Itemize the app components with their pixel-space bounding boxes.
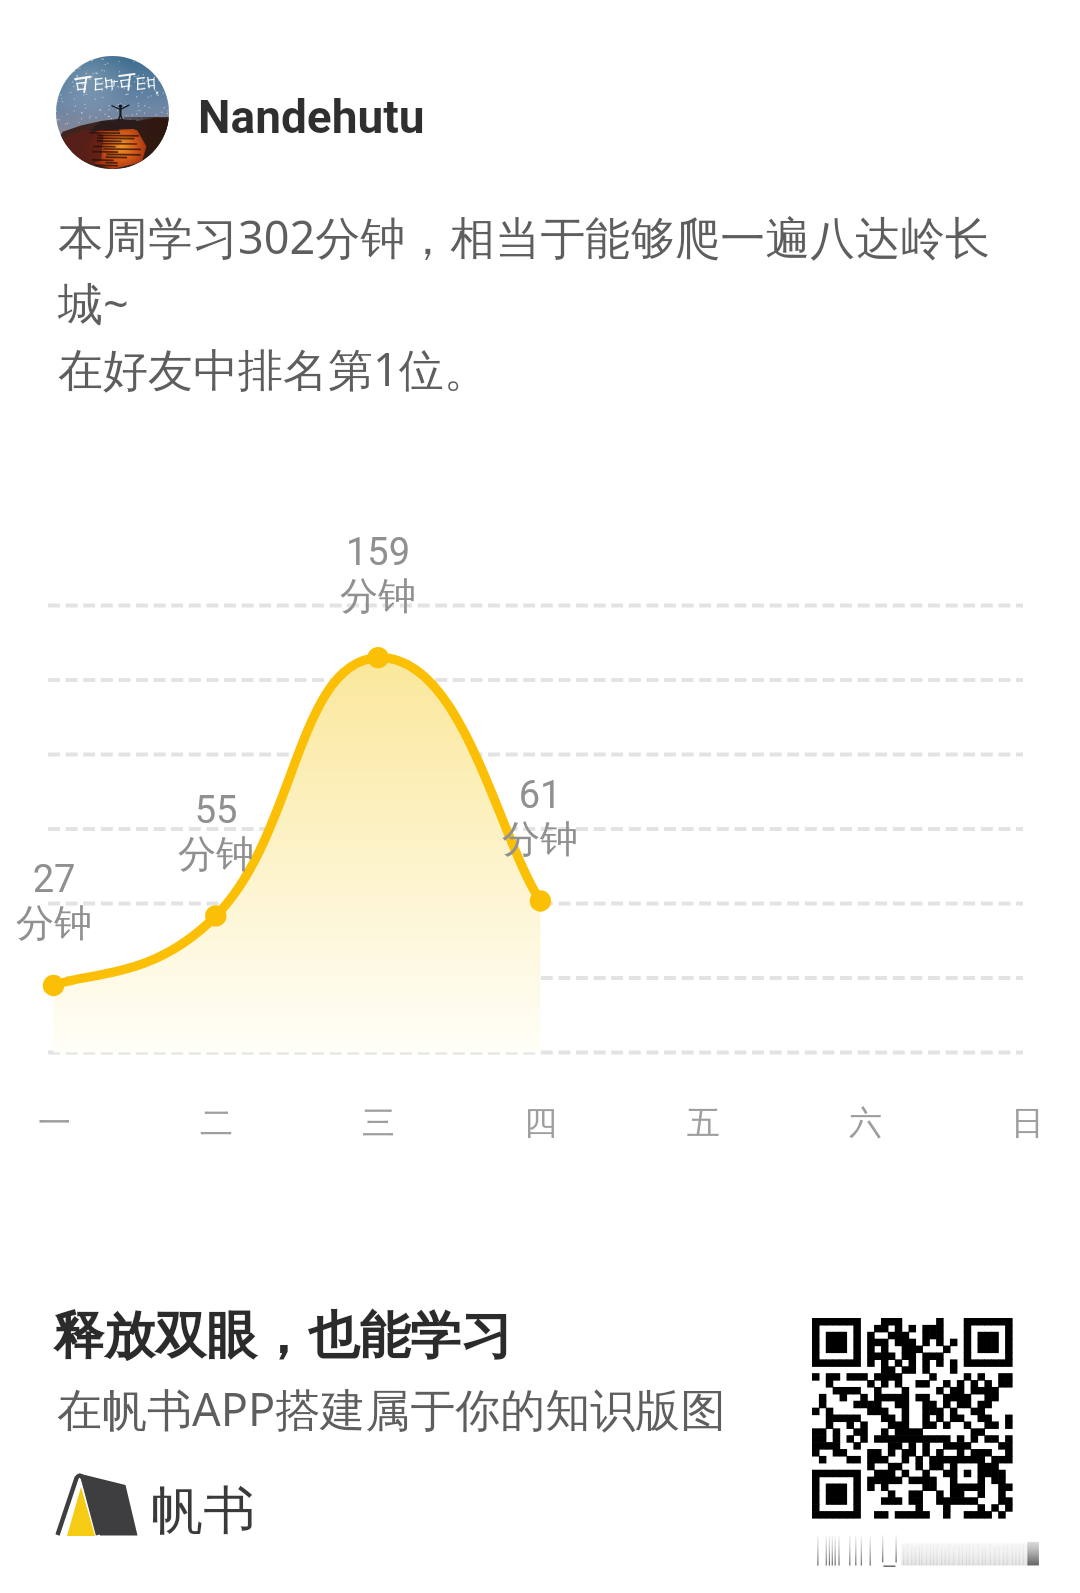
staticText: 六 <box>849 1102 882 1144</box>
staticText: 本周学习302分钟，相当于能够爬一遍八达岭长城~ 在好友中排名第1位。 <box>58 206 1028 400</box>
staticText: 四 <box>524 1102 557 1144</box>
button[interactable]: Scan QR code <box>812 1318 1012 1518</box>
staticText: 释放双眼，也能学习 <box>53 1304 512 1368</box>
staticText: 二 <box>200 1102 233 1144</box>
staticText: 27 分钟 <box>16 857 92 947</box>
staticText: 在帆书APP搭建属于你的知识版图 <box>57 1378 726 1439</box>
staticText: Nandehutu <box>198 90 425 144</box>
staticText: 一 <box>38 1102 71 1144</box>
button[interactable]: Profile avatar <box>56 56 169 169</box>
staticText: 五 <box>687 1102 720 1144</box>
staticText: 帆书 <box>151 1478 255 1544</box>
staticText: 日 <box>1011 1102 1044 1144</box>
button[interactable]: Nandehutu <box>198 90 425 144</box>
staticText: 55 分钟 <box>178 788 254 878</box>
staticText: 61 分钟 <box>502 773 578 863</box>
staticText: 三 <box>362 1102 395 1144</box>
staticText: 159 分钟 <box>340 530 416 620</box>
